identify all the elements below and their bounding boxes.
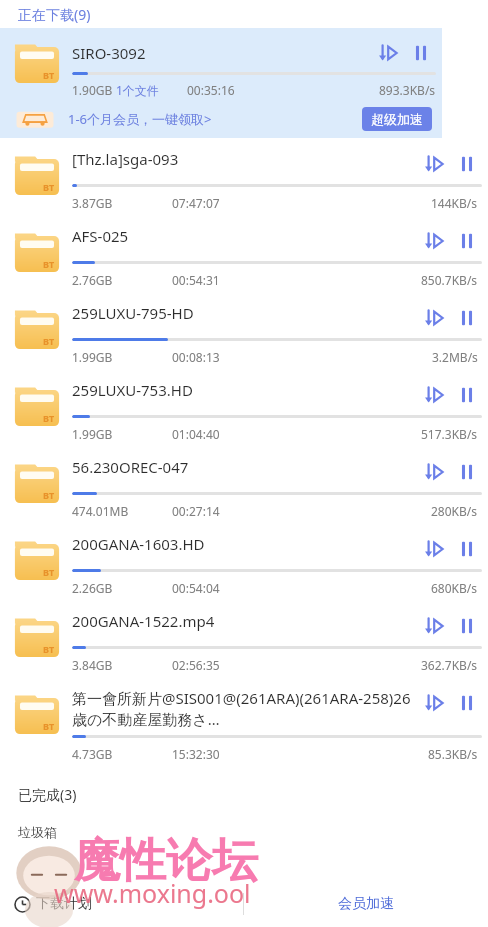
button[interactable]: Resume download <box>418 611 448 641</box>
button[interactable]: Resume download <box>418 303 448 333</box>
staticText: 280KB/s <box>431 503 478 519</box>
staticText: 07:47:07 <box>172 195 220 211</box>
staticText: BT <box>43 335 55 347</box>
staticText: 1.90GB <box>72 82 116 98</box>
staticText: 4.73GB <box>72 746 113 762</box>
staticText: 200GANA-1603.HD <box>72 534 412 554</box>
staticText: 850.7KB/s <box>421 272 478 288</box>
staticText: 3.87GB <box>72 195 113 211</box>
staticText: 200GANA-1522.mp4 <box>72 611 412 631</box>
staticText: 00:27:14 <box>172 503 220 519</box>
button[interactable]: Resume download <box>418 226 448 256</box>
staticText: 259LUXU-795-HD <box>72 303 412 323</box>
staticText: 474.01MB <box>72 503 129 519</box>
button[interactable]: Pause download <box>452 534 482 564</box>
staticText: 56.230OREC-047 <box>72 457 412 477</box>
button[interactable]: Pause download <box>452 688 482 718</box>
button[interactable]: Pause download <box>452 611 482 641</box>
staticText: BT <box>43 566 55 578</box>
staticText: [Thz.la]sga-093 <box>72 149 412 169</box>
staticText: 01:04:40 <box>172 426 220 442</box>
staticText: 魔性论坛 <box>74 832 258 890</box>
staticText: 正在下载(9) <box>18 5 91 24</box>
button[interactable]: 会员加速 <box>244 881 488 927</box>
button[interactable]: Resume download <box>418 149 448 179</box>
staticText: 1-6个月会员，一键领取> <box>68 110 212 128</box>
staticText: 超级加速 <box>371 111 423 127</box>
button[interactable]: 下载计划 <box>0 881 243 927</box>
button[interactable]: Resume download <box>418 457 448 487</box>
button[interactable]: Resume download <box>372 38 402 68</box>
button[interactable]: BT <box>0 446 488 523</box>
staticText: SIRO-3092 <box>72 43 372 63</box>
button[interactable]: 1-6个月会员，一键领取> <box>14 100 432 138</box>
staticText: BT <box>43 181 55 193</box>
staticText: 1.99GB <box>72 349 113 365</box>
staticText: 144KB/s <box>431 195 478 211</box>
staticText: BT <box>43 69 55 81</box>
staticText: 00:35:16 <box>187 82 235 98</box>
button[interactable]: Resume download <box>418 380 448 410</box>
button[interactable]: BT <box>0 523 488 600</box>
staticText: 00:08:13 <box>172 349 220 365</box>
staticText: 680KB/s <box>431 580 478 596</box>
staticText: www.moxing.ool <box>54 876 251 910</box>
staticText: 3.84GB <box>72 657 113 673</box>
button[interactable]: BT <box>0 600 488 677</box>
staticText: BT <box>43 412 55 424</box>
button[interactable]: Resume download <box>418 534 448 564</box>
staticText: 2.26GB <box>72 580 113 596</box>
staticText: AFS-025 <box>72 226 412 246</box>
staticText: 第一會所新片@SIS001@(261ARA)(261ARA-258)26歳の不動… <box>72 688 412 729</box>
staticText: BT <box>43 489 55 501</box>
staticText: 3.2MB/s <box>432 349 478 365</box>
button[interactable]: Pause download <box>452 149 482 179</box>
staticText: 00:54:04 <box>172 580 220 596</box>
button[interactable]: Pause download <box>452 380 482 410</box>
staticText: 垃圾箱 <box>18 824 57 840</box>
button[interactable]: BT <box>0 292 488 369</box>
staticText: 2.76GB <box>72 272 113 288</box>
button[interactable]: 超级加速 <box>362 107 432 131</box>
staticText: 1个文件 <box>116 82 159 98</box>
button[interactable]: BT <box>0 369 488 446</box>
staticText: 362.7KB/s <box>421 657 478 673</box>
button[interactable]: BT <box>0 215 488 292</box>
button[interactable]: Pause download <box>406 38 436 68</box>
staticText: 15:32:30 <box>172 746 220 762</box>
staticText: BT <box>43 643 55 655</box>
button[interactable]: Pause download <box>452 226 482 256</box>
staticText: 259LUXU-753.HD <box>72 380 412 400</box>
staticText: 下载计划 <box>36 895 92 913</box>
staticText: 会员加速 <box>338 895 394 913</box>
button[interactable]: Pause download <box>452 457 482 487</box>
button[interactable]: Resume download <box>418 688 448 718</box>
staticText: 1.99GB <box>72 426 113 442</box>
button[interactable]: BT <box>0 28 442 138</box>
staticText: 893.3KB/s <box>379 82 436 98</box>
staticText: 517.3KB/s <box>421 426 478 442</box>
staticText: 02:56:35 <box>172 657 220 673</box>
staticText: 已完成(3) <box>18 785 77 804</box>
staticText: 85.3KB/s <box>428 746 478 762</box>
button[interactable]: BT <box>0 677 488 774</box>
button[interactable]: Pause download <box>452 303 482 333</box>
staticText: BT <box>43 258 55 270</box>
staticText: BT <box>43 720 55 732</box>
button[interactable]: BT <box>0 138 488 215</box>
staticText: 00:54:31 <box>172 272 220 288</box>
